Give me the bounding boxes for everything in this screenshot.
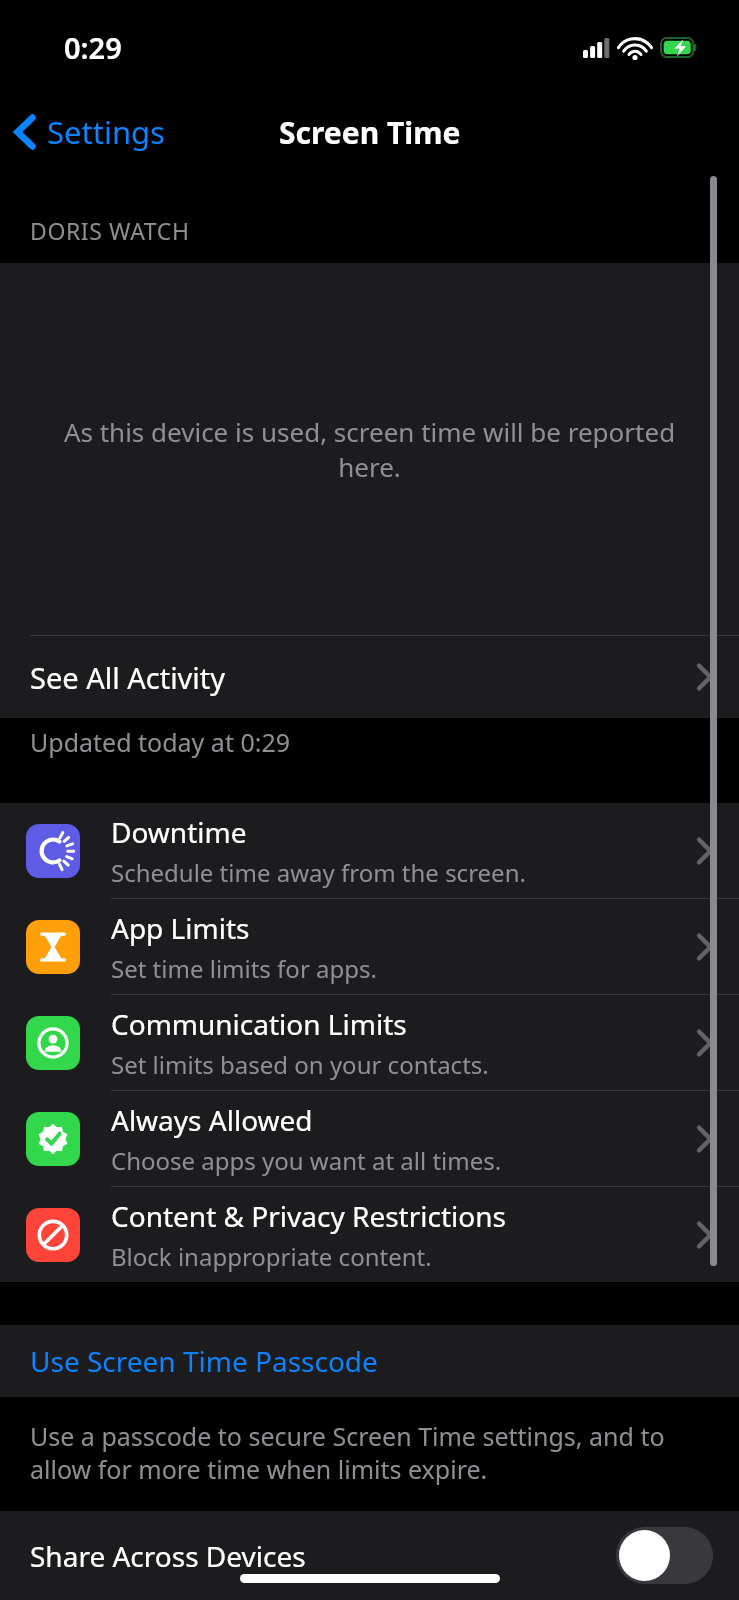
- staticText: App Limits: [111, 909, 250, 947]
- staticText: Screen Time: [279, 112, 461, 153]
- button[interactable]: Always Allowed: [0, 1091, 739, 1186]
- staticText: Downtime: [111, 813, 247, 851]
- staticText: Block inappropriate content.: [111, 1240, 432, 1273]
- button[interactable]: Communication Limits: [0, 995, 739, 1090]
- button[interactable]: Settings: [0, 105, 175, 159]
- staticText: Communication Limits: [111, 1005, 407, 1043]
- staticText: Set limits based on your contacts.: [111, 1048, 489, 1081]
- staticText: Settings: [47, 111, 165, 153]
- button[interactable]: Content & Privacy Restrictions: [0, 1187, 739, 1282]
- button[interactable]: Use Screen Time Passcode: [0, 1325, 739, 1397]
- staticText: DORIS WATCH: [30, 215, 190, 246]
- staticText: See All Activity: [30, 658, 696, 697]
- staticText: Set time limits for apps.: [111, 952, 377, 985]
- staticText: Share Across Devices: [30, 1537, 616, 1575]
- button[interactable]: App Limits: [0, 899, 739, 994]
- staticText: Always Allowed: [111, 1101, 313, 1139]
- staticText: Schedule time away from the screen.: [111, 856, 526, 889]
- staticText: As this device is used, screen time will…: [30, 414, 709, 484]
- staticText: 0:29: [64, 28, 122, 67]
- staticText: Use Screen Time Passcode: [30, 1342, 378, 1380]
- button[interactable]: See All Activity: [0, 636, 739, 718]
- staticText: Choose apps you want at all times.: [111, 1144, 502, 1177]
- staticText: Updated today at 0:29: [30, 725, 291, 759]
- staticText: Content & Privacy Restrictions: [111, 1197, 506, 1235]
- button[interactable]: Share Across Devices: [0, 1511, 739, 1600]
- button[interactable]: Share Across Devices toggle: [616, 1527, 713, 1584]
- button[interactable]: Downtime: [0, 803, 739, 898]
- staticText: Use a passcode to secure Screen Time set…: [30, 1419, 699, 1486]
